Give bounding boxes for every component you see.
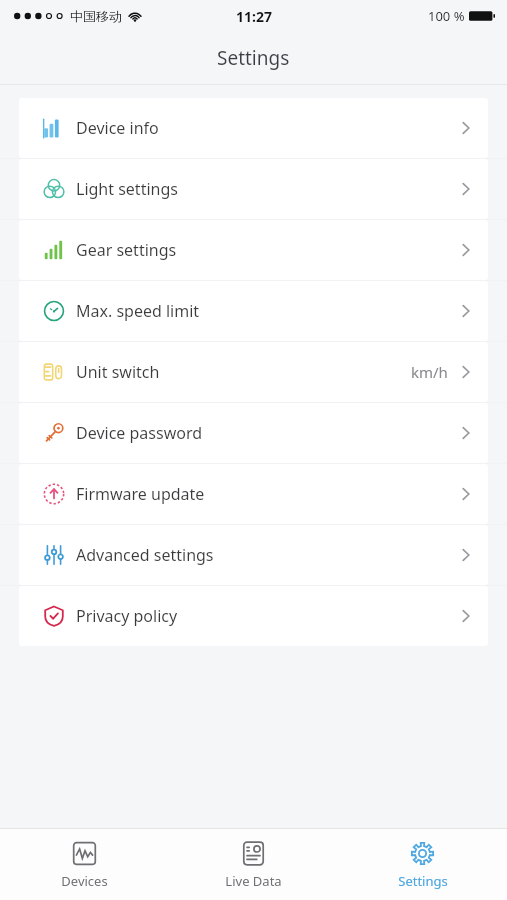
button[interactable]: Devices (0, 829, 169, 900)
other: Live Data (240, 840, 267, 867)
staticText: Firmware update (76, 483, 205, 505)
staticText: 11:27 (236, 7, 272, 26)
staticText: Settings (217, 45, 290, 71)
button[interactable]: Privacy policy (19, 586, 488, 646)
staticText: Device info (76, 117, 159, 139)
staticText: Devices (61, 872, 108, 890)
button[interactable]: Firmware update (19, 464, 488, 524)
other: Settings (409, 840, 436, 867)
staticText: Device password (76, 422, 203, 444)
staticText: 中国移动 (70, 8, 122, 24)
staticText: Max. speed limit (76, 300, 200, 322)
staticText: Light settings (76, 178, 178, 200)
button[interactable]: Live Data (169, 829, 338, 900)
staticText: Settings (398, 872, 448, 890)
button[interactable]: Device password (19, 403, 488, 463)
button[interactable]: Light settings (19, 159, 488, 219)
other: Devices (71, 840, 98, 867)
staticText: 100 % (428, 7, 465, 25)
button[interactable]: Unit switch (19, 342, 488, 402)
staticText: Unit switch (76, 361, 160, 383)
staticText: km/h (411, 362, 448, 382)
staticText: Live Data (225, 872, 282, 890)
button[interactable]: Advanced settings (19, 525, 488, 585)
button[interactable]: Max. speed limit (19, 281, 488, 341)
button[interactable]: Device info (19, 98, 488, 158)
button[interactable]: Settings (338, 829, 507, 900)
staticText: Gear settings (76, 239, 177, 261)
button[interactable]: Gear settings (19, 220, 488, 280)
staticText: Privacy policy (76, 605, 178, 627)
staticText: Advanced settings (76, 544, 214, 566)
